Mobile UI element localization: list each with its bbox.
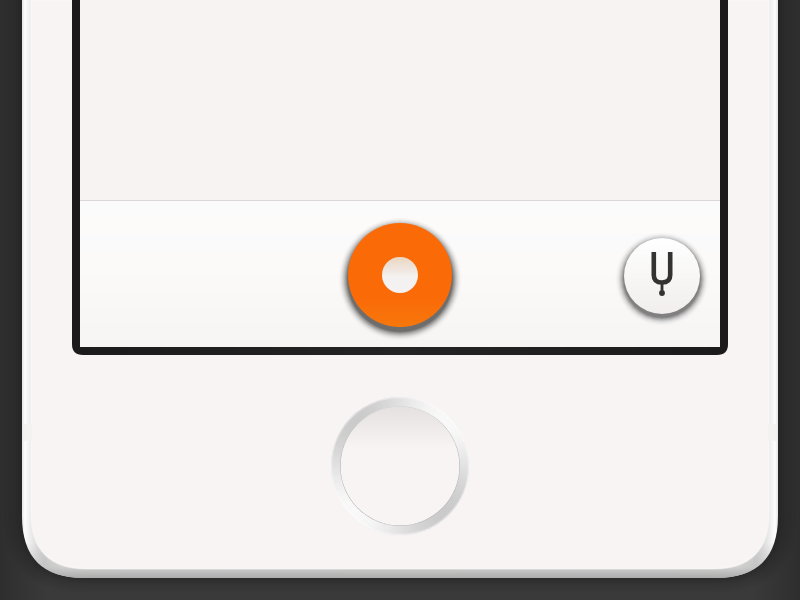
button[interactable]: Record	[348, 223, 452, 327]
button[interactable]: Home	[331, 397, 469, 535]
button[interactable]: Tuner	[624, 238, 700, 314]
